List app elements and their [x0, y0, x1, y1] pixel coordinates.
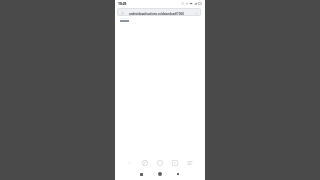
- button[interactable]: Stop loading: [195, 12, 198, 15]
- staticText: androidapplications.ru/download/1060: [129, 12, 184, 16]
- button[interactable]: Tabs: [172, 158, 178, 167]
- staticText: androidapplications.ru/download/1060: [129, 12, 184, 16]
- button[interactable]: Back: [137, 169, 145, 179]
- staticText: 10:25: [118, 1, 127, 5]
- button[interactable]: Home: [157, 158, 163, 167]
- button[interactable]: Recent apps: [174, 169, 182, 179]
- button[interactable]: Menu: [187, 158, 193, 167]
- button[interactable]: Home: [156, 169, 164, 179]
- button[interactable]: Back: [127, 158, 133, 167]
- button[interactable]: Share: [142, 158, 148, 167]
- staticText: 10:25: [118, 1, 127, 5]
- button[interactable]: androidapplications.ru/download/1060: [117, 8, 201, 16]
